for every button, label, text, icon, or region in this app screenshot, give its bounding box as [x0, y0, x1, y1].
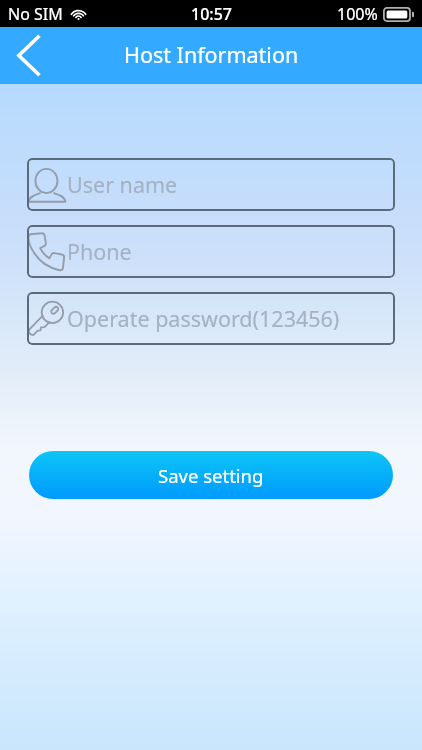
button[interactable]: Operate password(123456) — [27, 292, 395, 345]
button[interactable]: Save setting — [29, 451, 393, 499]
staticText: Save setting — [158, 463, 264, 488]
staticText: Phone — [67, 237, 132, 266]
staticText: User name — [67, 170, 178, 199]
staticText: 10:57 — [191, 3, 232, 25]
staticText: 100% — [337, 3, 378, 25]
button[interactable]: User name — [27, 158, 395, 211]
staticText: No SIM — [8, 3, 63, 25]
staticText: Operate password(123456) — [67, 304, 340, 333]
staticText: Host Information — [124, 40, 299, 69]
button[interactable]: Phone — [27, 225, 395, 278]
button[interactable]: Back — [0, 27, 56, 84]
